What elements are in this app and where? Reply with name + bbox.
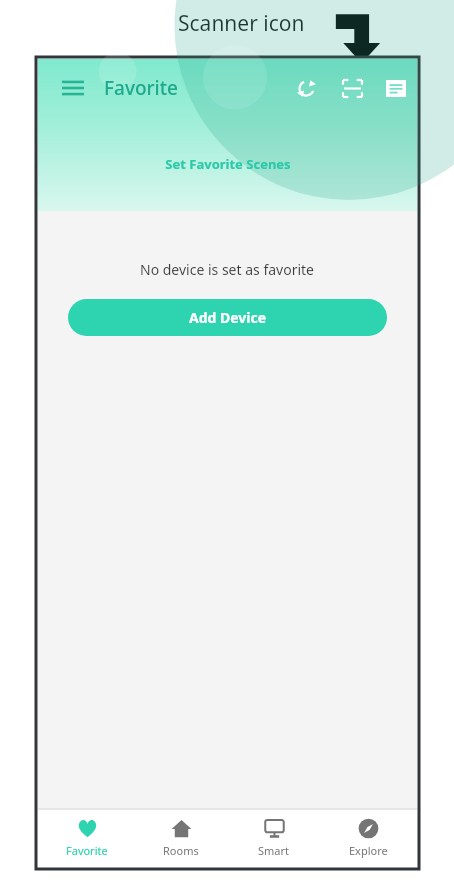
staticText: Set Favorite Scenes (165, 155, 291, 173)
button[interactable]: Refresh (287, 69, 325, 107)
button[interactable]: Messages (379, 69, 413, 107)
staticText: Smart (258, 843, 290, 858)
staticText: Favorite (104, 75, 178, 101)
button[interactable]: Menu (56, 71, 90, 105)
button[interactable]: Scanner (333, 69, 371, 107)
button[interactable]: Rooms (137, 812, 225, 864)
button[interactable]: Favorite (43, 812, 131, 864)
button[interactable]: Add Device (68, 299, 387, 336)
button[interactable]: Set Favorite Scenes (153, 151, 303, 177)
staticText: Explore (349, 843, 388, 858)
staticText: Favorite (66, 843, 108, 858)
button[interactable]: Explore (324, 812, 412, 864)
button[interactable]: Smart (230, 812, 318, 864)
staticText: Scanner icon (178, 9, 305, 38)
staticText: No device is set as favorite (140, 260, 315, 279)
staticText: Rooms (163, 843, 199, 858)
staticText: Add Device (189, 308, 267, 327)
